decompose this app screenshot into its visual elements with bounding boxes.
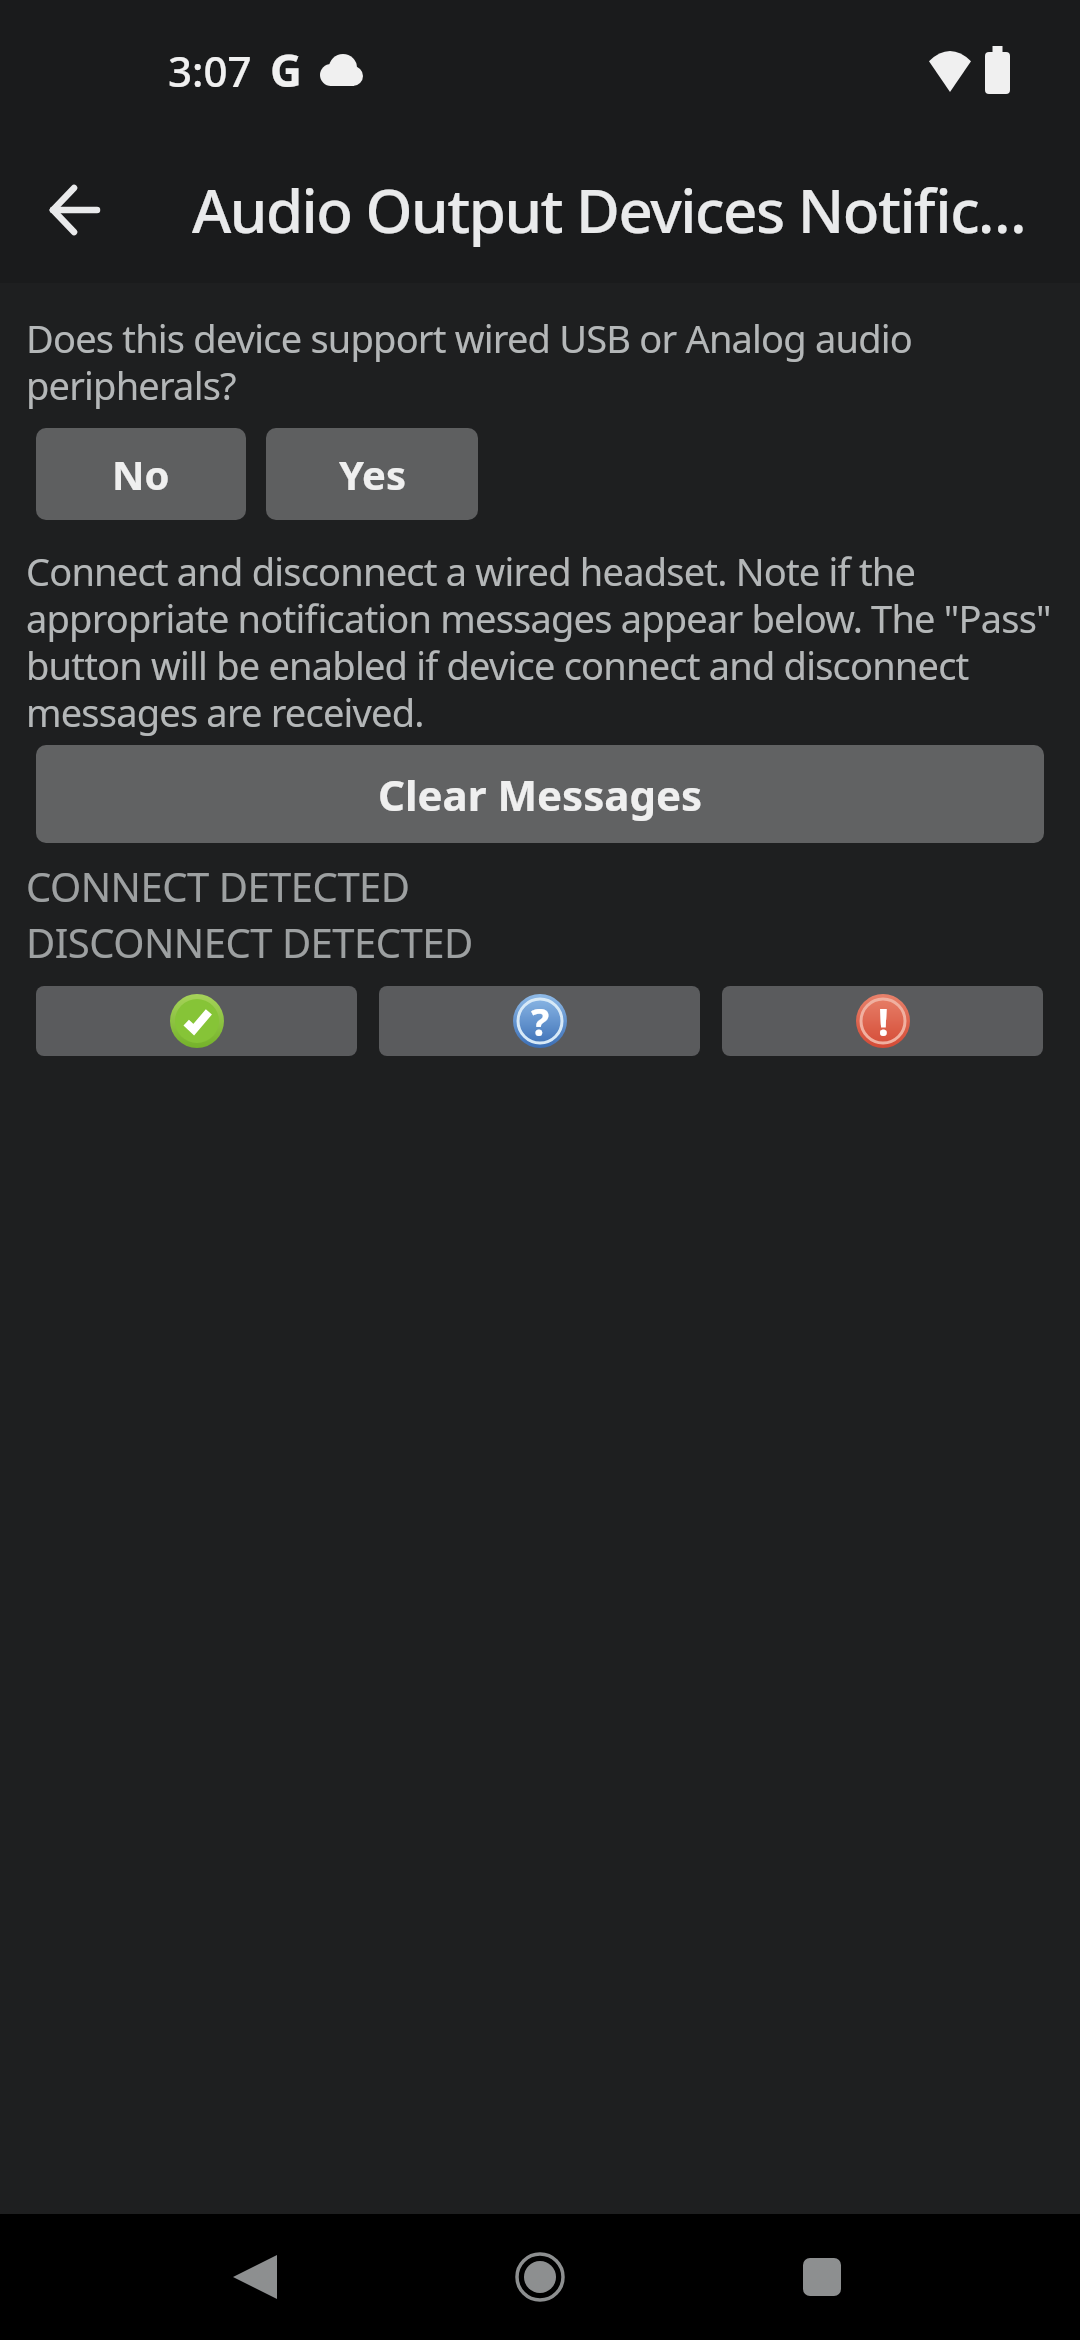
button[interactable] <box>36 986 357 1056</box>
staticText: Connect and disconnect a wired headset. … <box>26 545 1051 738</box>
staticText: DISCONNECT DETECTED <box>26 915 473 969</box>
staticText: Audio Output Devices Notifications <box>192 169 1040 251</box>
button[interactable] <box>213 2235 297 2319</box>
button[interactable] <box>30 165 120 255</box>
button[interactable] <box>780 2235 864 2319</box>
staticText: G <box>270 40 302 100</box>
staticText: CONNECT DETECTED <box>26 859 410 913</box>
staticText: Yes <box>339 447 406 501</box>
button[interactable]: ! <box>722 986 1043 1056</box>
staticText: No <box>112 447 170 501</box>
staticText: ! <box>878 995 889 1047</box>
staticText: Does this device support wired USB or An… <box>26 312 912 411</box>
button[interactable]: No <box>36 428 246 520</box>
button[interactable]: ? <box>379 986 700 1056</box>
staticText: ? <box>531 995 550 1047</box>
button[interactable]: Clear Messages <box>36 745 1044 843</box>
staticText: 3:07 <box>168 42 252 99</box>
button[interactable] <box>498 2235 582 2319</box>
staticText: Clear Messages <box>378 766 703 823</box>
button[interactable]: Yes <box>266 428 478 520</box>
